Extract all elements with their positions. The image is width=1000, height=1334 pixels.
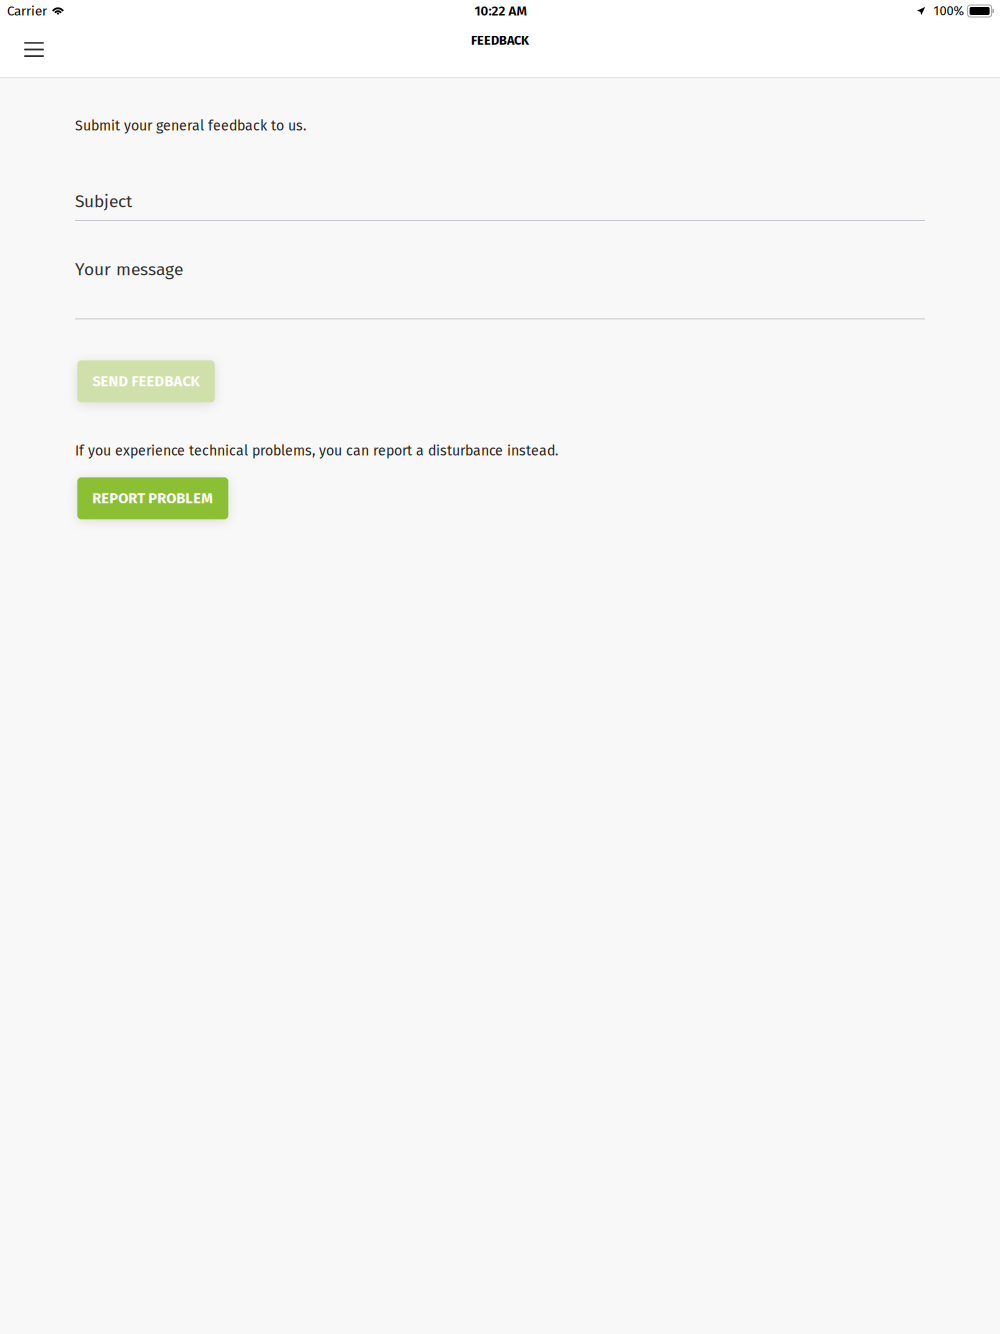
button[interactable]: REPORT PROBLEM [77, 477, 228, 519]
staticText: Your message [75, 259, 183, 280]
staticText: Carrier [7, 3, 47, 19]
staticText: 100% [934, 3, 965, 19]
button[interactable]: Menu [12, 27, 56, 71]
staticText: 10:22 AM [474, 3, 526, 19]
textField[interactable]: Subject [75, 191, 925, 212]
staticText: FEEDBACK [471, 33, 529, 48]
textField[interactable]: Your message [75, 259, 925, 280]
staticText: SEND FEEDBACK [92, 373, 199, 390]
staticText: REPORT PROBLEM [92, 489, 213, 507]
staticText: Submit your general feedback to us. [75, 117, 306, 134]
staticText: Subject [75, 191, 132, 212]
staticText: If you experience technical problems, yo… [75, 442, 558, 459]
button[interactable]: SEND FEEDBACK [77, 360, 215, 402]
